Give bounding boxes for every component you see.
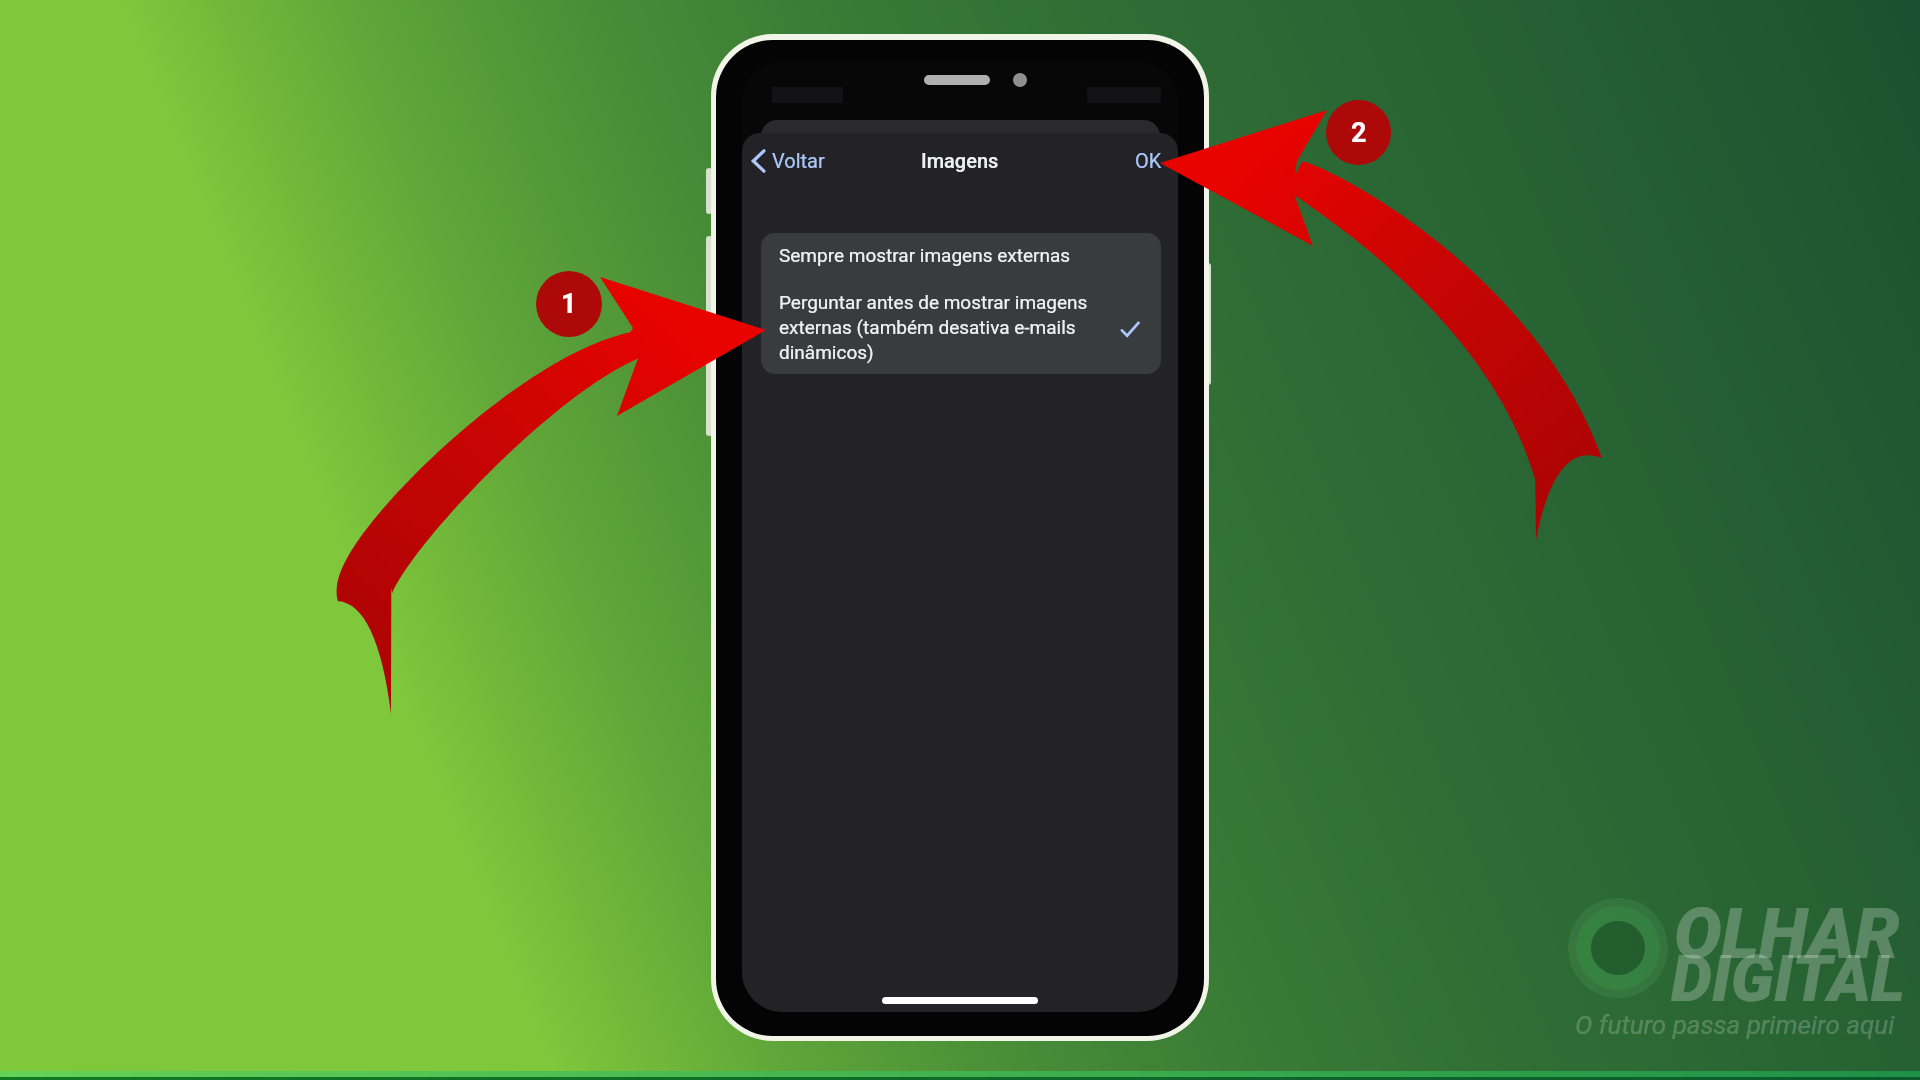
staticText: O futuro passa primeiro aqui [1575, 1010, 1895, 1040]
staticText: Voltar [772, 149, 825, 172]
staticText: Sempre mostrar imagens externas [779, 244, 1071, 266]
button[interactable]: Sempre mostrar imagens externas [761, 233, 1161, 285]
staticText: Perguntar antes de mostrar imagens exter… [779, 291, 1095, 363]
button[interactable]: Voltar [746, 142, 831, 179]
staticText: 2 [1351, 117, 1367, 149]
staticText: 1 [561, 288, 577, 320]
staticText: DIGITAL [1671, 941, 1906, 1017]
staticText: Imagens [921, 149, 999, 172]
button[interactable]: Perguntar antes de mostrar imagens exter… [761, 285, 1161, 374]
staticText: OK [1135, 149, 1162, 172]
staticText: OLHAR [1674, 892, 1900, 975]
button[interactable]: OK [1129, 142, 1168, 179]
other: Selecionado [1121, 321, 1139, 339]
